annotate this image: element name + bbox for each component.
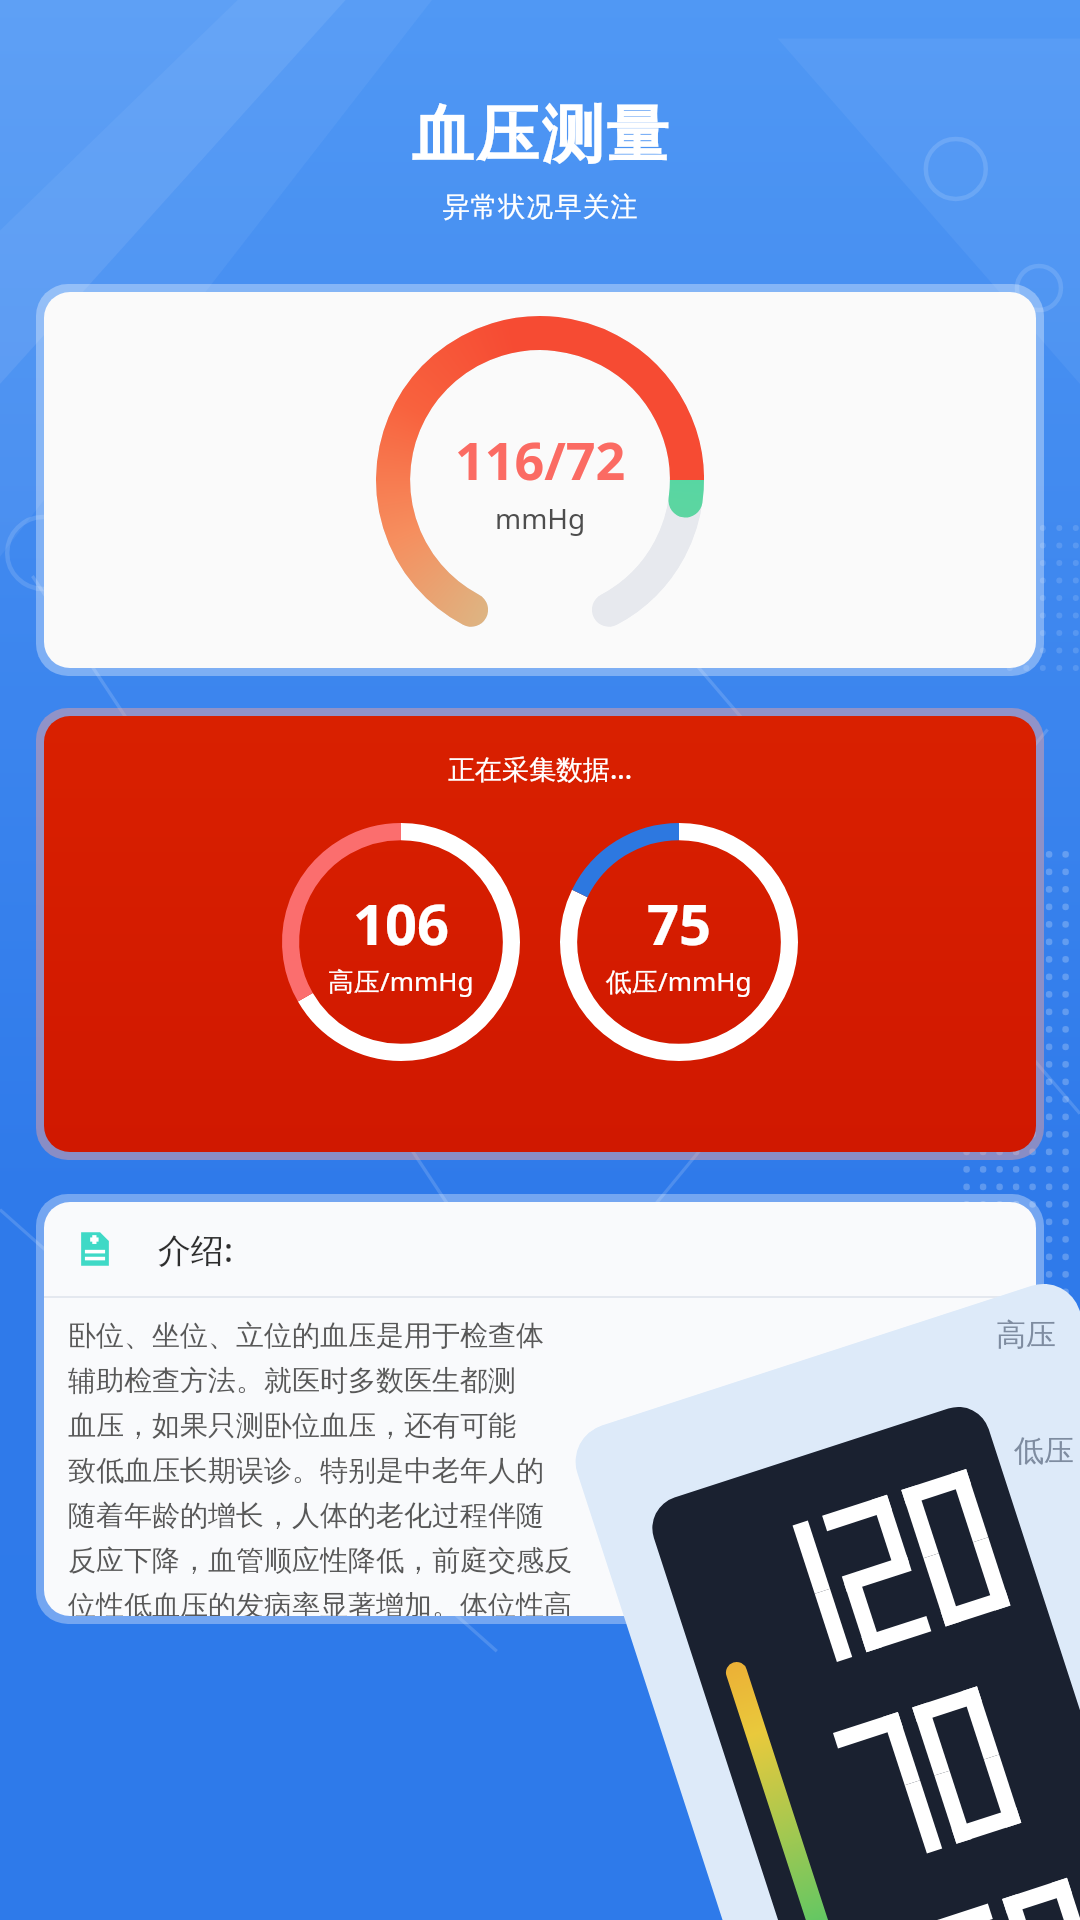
other: Introduction [74,1228,116,1270]
staticText: 正在采集数据... [448,750,633,787]
staticText: 75 [647,885,712,961]
button[interactable]: 正在采集数据... [44,716,1036,1152]
staticText: 异常状况早关注 [442,190,638,224]
staticText: mmHg [495,499,586,537]
staticText: 116/72 [455,424,626,495]
staticText: 高压/mmHg [328,963,474,999]
staticText: 高压 [996,1316,1056,1354]
button[interactable]: 116/72 [44,292,1036,668]
staticText: 卧位、坐位、立位的血压是用于检查体 辅助检查方法。就医时多数医生都测 血压，如果… [68,1318,572,1616]
staticText: 低压 [1014,1432,1074,1470]
staticText: 血压测量 [410,96,670,174]
staticText: 介绍: [158,1227,233,1272]
staticText: 低压/mmHg [606,963,752,999]
button[interactable]: Introduction [44,1202,1036,1616]
staticText: 106 [353,885,450,961]
